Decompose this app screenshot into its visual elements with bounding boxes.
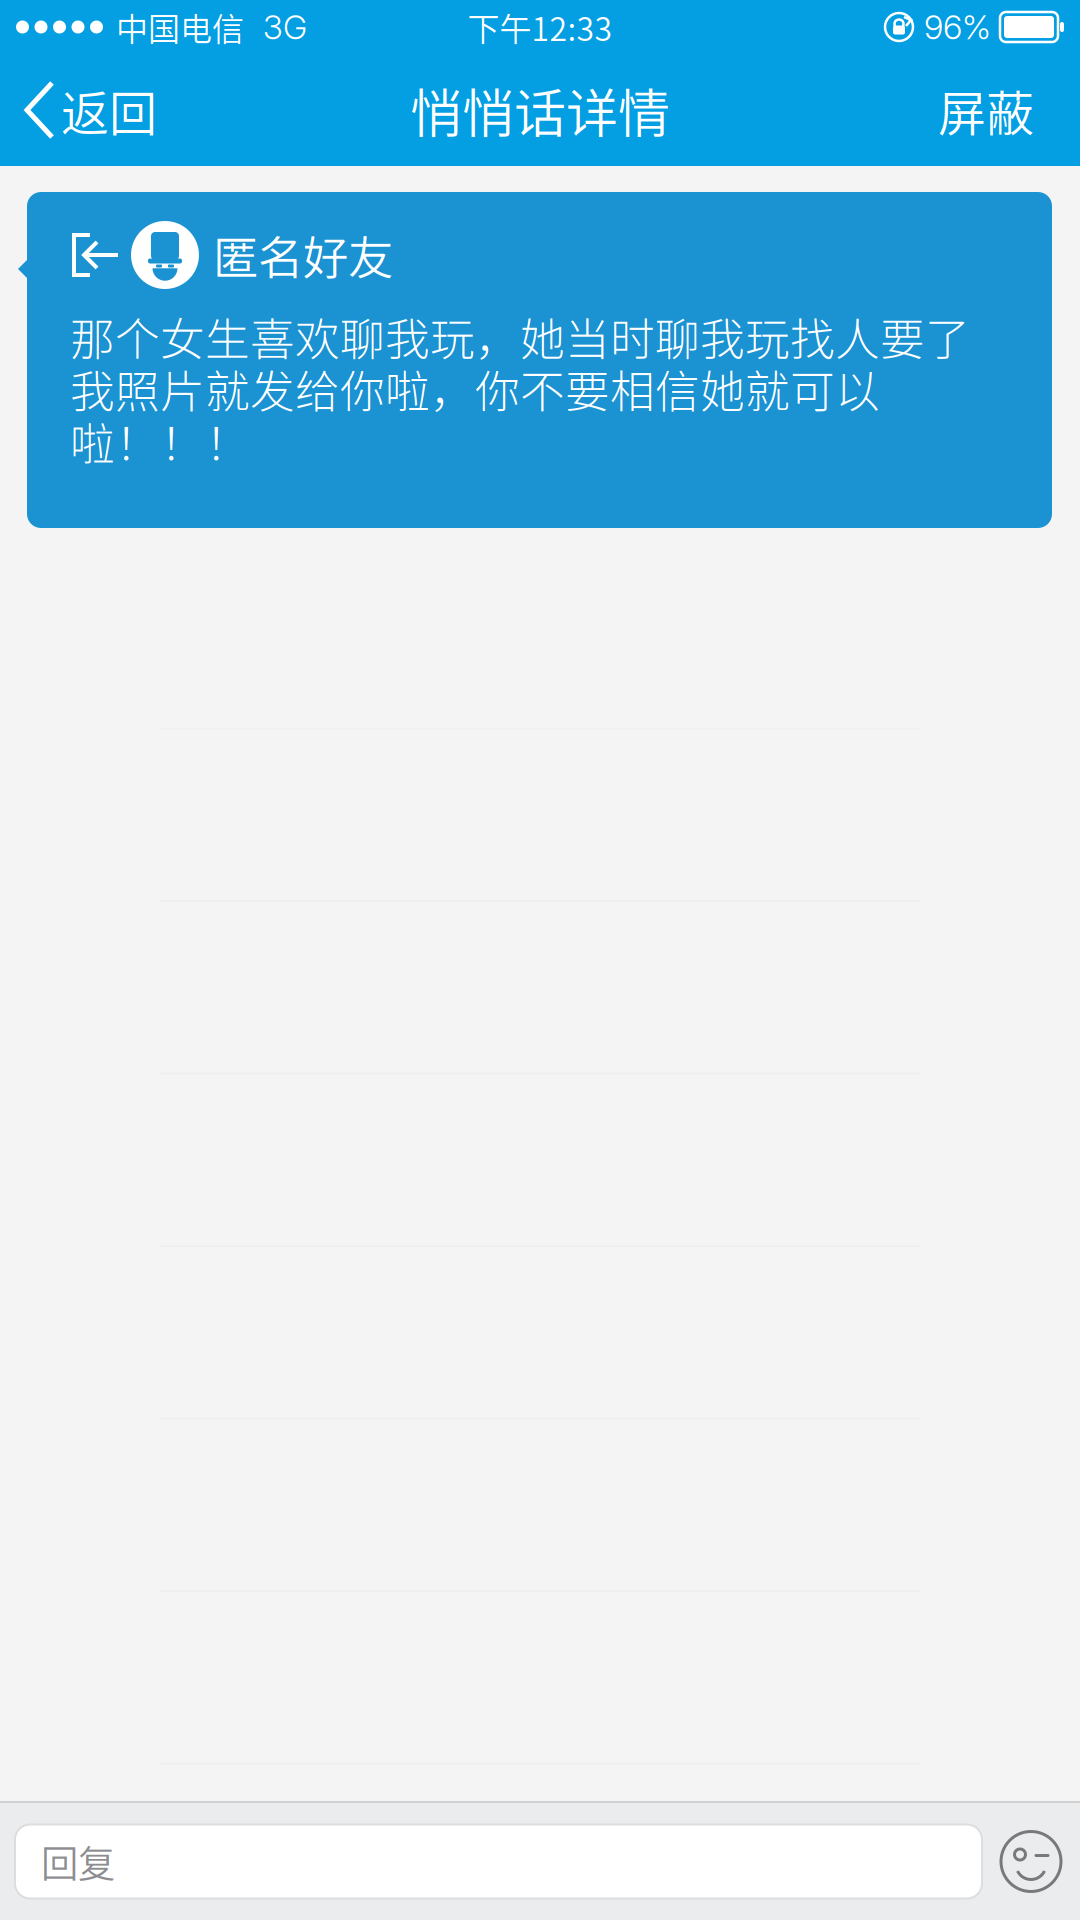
button[interactable]: 回复	[15, 1824, 982, 1898]
staticText: 96%	[924, 7, 991, 47]
staticText: 中国电信	[116, 4, 244, 50]
button[interactable]: 表情	[982, 1824, 1080, 1898]
staticText: 屏蔽	[938, 75, 1034, 145]
button[interactable]: 返回	[0, 54, 173, 166]
staticText: 回复	[41, 1834, 115, 1889]
button[interactable]: 屏蔽	[914, 54, 1080, 166]
staticText: 返回	[61, 75, 157, 145]
staticText: 那个女生喜欢聊我玩，她当时聊我玩找人要了我照片就发给你啦，你不要相信她就可以啦！…	[70, 310, 970, 467]
staticText: 匿名好友	[213, 222, 393, 288]
staticText: 下午12:33	[467, 4, 612, 50]
button[interactable]: 匿名好友	[0, 166, 1080, 528]
staticText: 悄悄话详情	[410, 72, 670, 148]
staticText: 3G	[263, 7, 307, 47]
